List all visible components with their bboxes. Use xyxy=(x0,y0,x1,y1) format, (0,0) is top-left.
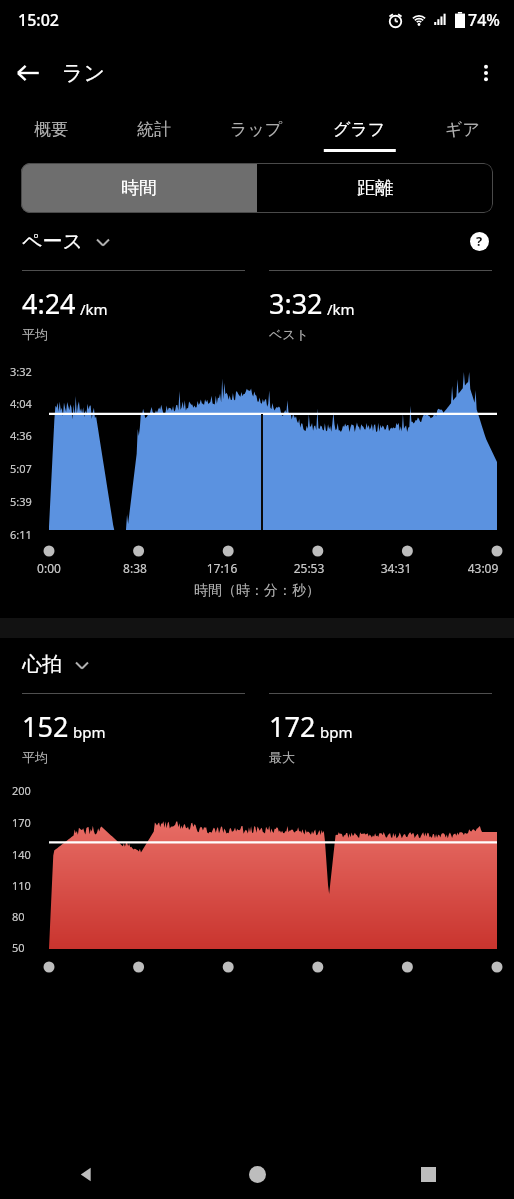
staticText: 平均 xyxy=(22,749,48,765)
staticText: 140 xyxy=(12,847,31,862)
button[interactable]: Help xyxy=(466,228,492,254)
button[interactable]: 概要 xyxy=(0,106,102,152)
staticText: グラフ xyxy=(333,119,386,140)
staticText: 43:09 xyxy=(458,560,508,576)
staticText: 34:31 xyxy=(371,560,421,576)
staticText: 4:04 xyxy=(10,396,32,411)
button[interactable]: Back xyxy=(0,45,56,101)
staticText: ラン xyxy=(62,60,105,86)
staticText: 最大 xyxy=(269,749,295,765)
staticText: 50 xyxy=(12,940,25,955)
staticText: 平均 xyxy=(22,326,48,342)
button[interactable]: 距離 xyxy=(257,163,493,213)
staticText: 6:11 xyxy=(10,527,32,542)
staticText: 152 xyxy=(22,708,69,745)
button[interactable]: グラフ xyxy=(308,106,411,152)
staticText: 74% xyxy=(468,9,500,31)
button[interactable]: 心拍 xyxy=(22,652,90,677)
button[interactable]: ペース xyxy=(22,229,111,254)
staticText: 15:02 xyxy=(18,9,59,31)
staticText: 17:16 xyxy=(197,560,247,576)
staticText: 172 xyxy=(269,708,316,745)
staticText: bpm xyxy=(73,722,106,742)
button[interactable]: ギア xyxy=(411,106,514,152)
staticText: 4:24 xyxy=(22,285,76,322)
staticText: 統計 xyxy=(137,119,171,140)
button[interactable]: Recent apps xyxy=(343,1149,514,1199)
staticText: 25:53 xyxy=(284,560,334,576)
staticText: 5:07 xyxy=(10,461,32,476)
staticText: 8:38 xyxy=(110,560,160,576)
button[interactable]: 統計 xyxy=(102,106,205,152)
staticText: ラップ xyxy=(230,119,283,140)
button[interactable]: 時間 xyxy=(21,163,257,213)
staticText: 概要 xyxy=(34,119,68,140)
button[interactable]: More options xyxy=(458,45,514,101)
staticText: /km xyxy=(80,299,108,319)
staticText: bpm xyxy=(320,722,353,742)
staticText: 距離 xyxy=(357,177,393,200)
staticText: 170 xyxy=(12,815,31,830)
button[interactable]: Back xyxy=(0,1149,172,1199)
staticText: /km xyxy=(327,299,355,319)
staticText: 5:39 xyxy=(10,494,32,509)
staticText: 時間（時：分：秒） xyxy=(194,582,320,600)
staticText: 110 xyxy=(12,878,31,893)
staticText: ベスト xyxy=(269,326,309,342)
staticText: 200 xyxy=(12,783,31,798)
button[interactable]: ラップ xyxy=(205,106,308,152)
staticText: 3:32 xyxy=(10,364,32,379)
staticText: 3:32 xyxy=(269,285,323,322)
staticText: 0:00 xyxy=(24,560,74,576)
button[interactable]: Home xyxy=(172,1149,343,1199)
staticText: 心拍 xyxy=(22,652,62,677)
staticText: ペース xyxy=(22,229,83,254)
staticText: ? xyxy=(476,232,483,250)
staticText: 80 xyxy=(12,909,25,924)
staticText: 時間 xyxy=(121,177,157,200)
staticText: ギア xyxy=(445,119,480,140)
staticText: 4:36 xyxy=(10,428,32,443)
